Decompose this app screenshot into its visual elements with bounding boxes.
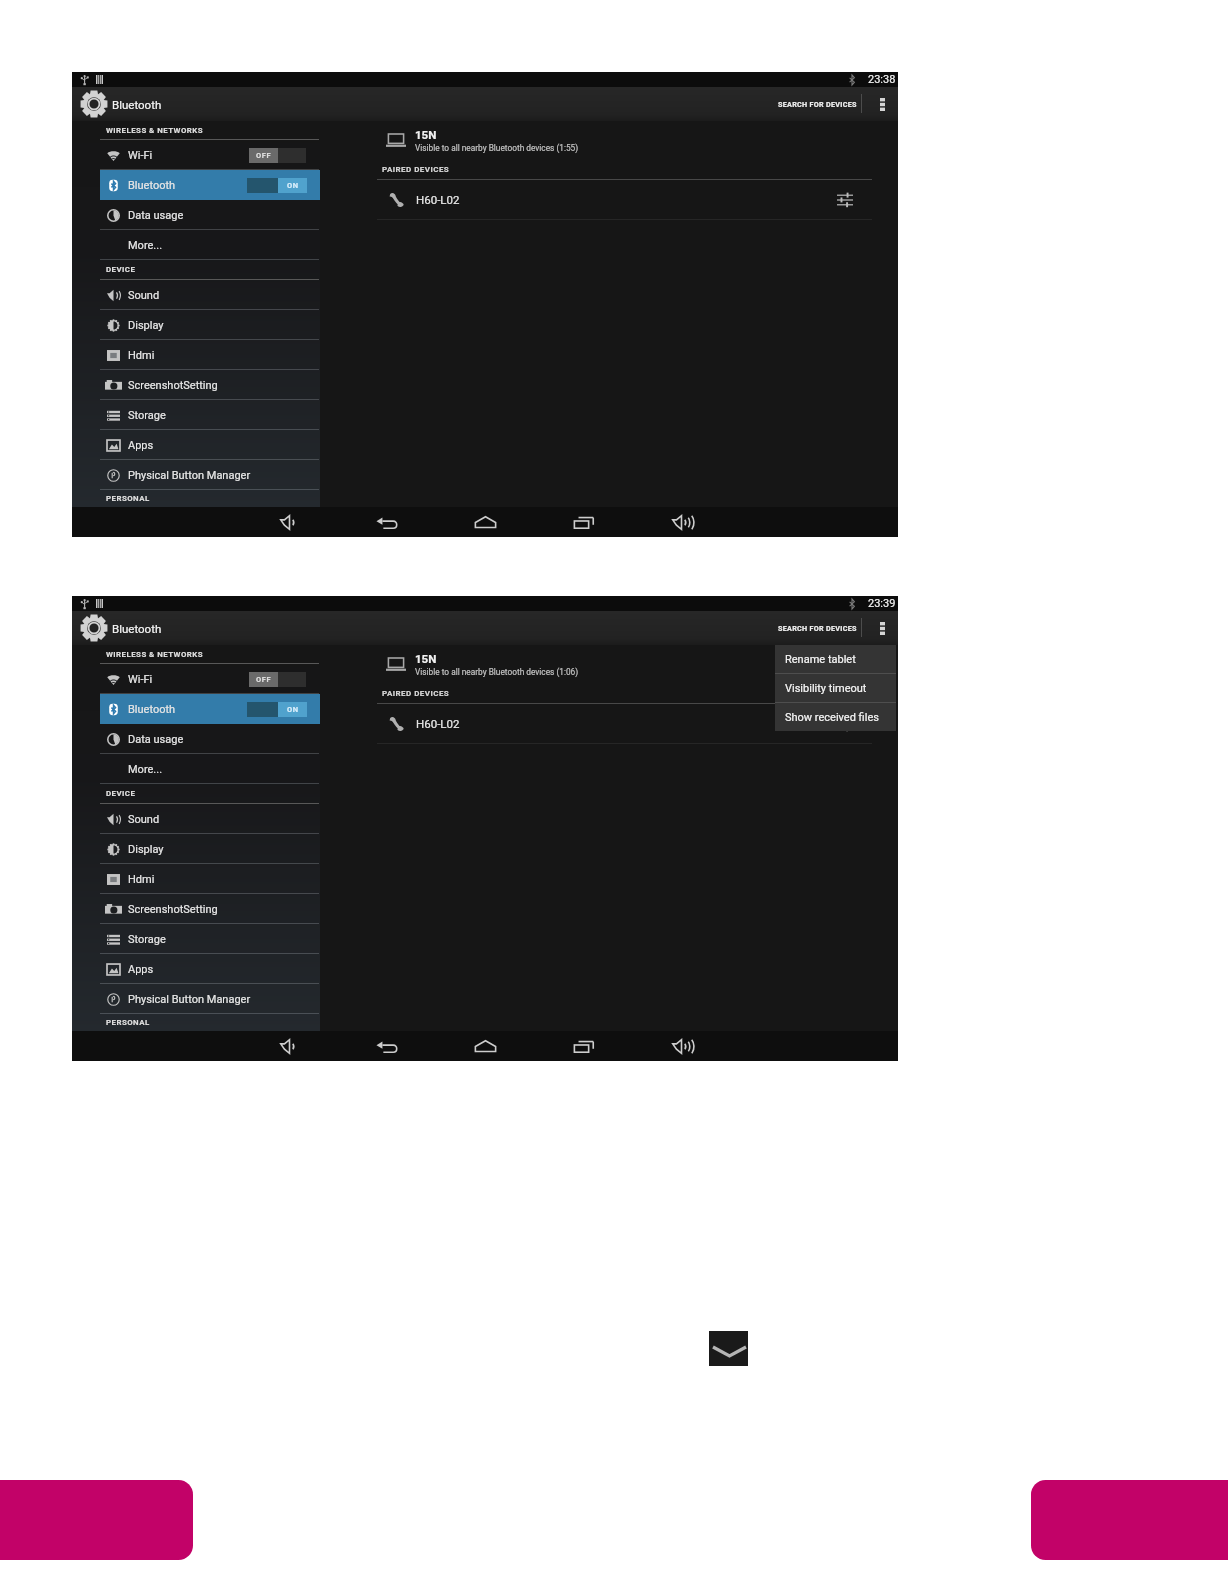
button[interactable]: Storage [72, 924, 320, 954]
staticText: Bluetooth [128, 179, 176, 192]
button[interactable]: SEARCH FOR DEVICES [772, 611, 862, 645]
button[interactable]: Apps [72, 430, 320, 460]
button[interactable]: Show received files [775, 703, 896, 731]
button[interactable]: Physical Button Manager [72, 460, 320, 490]
button[interactable]: Back [366, 507, 408, 537]
button[interactable]: Apps [72, 954, 320, 984]
staticText: 23:38 [868, 73, 896, 86]
button[interactable]: Home [464, 507, 506, 537]
staticText: PERSONAL [106, 494, 150, 503]
button[interactable]: OFF [249, 672, 306, 687]
staticText: Show received files [785, 711, 879, 724]
button[interactable]: Recents [563, 507, 605, 537]
button[interactable]: Hdmi [72, 340, 320, 370]
staticText: Display [128, 843, 164, 856]
staticText: Data usage [128, 209, 184, 222]
staticText: Visible to all nearby Bluetooth devices … [415, 143, 579, 153]
button[interactable]: H60-L02 [320, 704, 898, 743]
staticText: DEVICE [106, 789, 136, 798]
button[interactable]: More options [866, 611, 898, 645]
staticText: More... [128, 239, 163, 252]
button[interactable]: Mail [709, 1331, 748, 1366]
button[interactable]: More options [866, 87, 898, 121]
button[interactable]: H60-L02 [320, 180, 898, 219]
button[interactable]: OFF [249, 148, 306, 163]
button[interactable]: Display [72, 834, 320, 864]
button[interactable]: Data usage [72, 200, 320, 230]
staticText: ON [287, 705, 299, 714]
staticText: H60-L02 [416, 717, 460, 730]
button[interactable]: More... [72, 754, 320, 784]
staticText: WIRELESS & NETWORKS [106, 126, 204, 135]
button[interactable]: Home [464, 1031, 506, 1061]
button[interactable]: ScreenshotSetting [72, 894, 320, 924]
staticText: Hdmi [128, 873, 155, 886]
button[interactable]: Hdmi [72, 864, 320, 894]
button[interactable]: Volume down [268, 1031, 310, 1061]
staticText: Physical Button Manager [128, 469, 251, 482]
staticText: Rename tablet [785, 653, 856, 666]
staticText: Display [128, 319, 164, 332]
staticText: OFF [256, 675, 272, 684]
staticText: Bluetooth [112, 98, 162, 111]
staticText: ON [287, 181, 299, 190]
staticText: Bluetooth [112, 622, 162, 635]
button[interactable]: Device settings [834, 189, 856, 211]
staticText: Hdmi [128, 349, 155, 362]
staticText: PERSONAL [106, 1018, 150, 1027]
button[interactable]: Bluetooth [100, 694, 320, 724]
staticText: Apps [128, 963, 154, 976]
button[interactable]: SEARCH FOR DEVICES [772, 87, 862, 121]
staticText: Visible to all nearby Bluetooth devices … [415, 667, 579, 677]
staticText: ScreenshotSetting [128, 379, 218, 392]
staticText: Physical Button Manager [128, 993, 251, 1006]
button[interactable]: Volume up [660, 507, 702, 537]
button[interactable]: 15N [320, 645, 898, 685]
button[interactable]: Device settings [834, 713, 856, 735]
button[interactable]: ON [247, 702, 307, 717]
button[interactable]: Wi-Fi [72, 664, 320, 694]
staticText: Sound [128, 289, 160, 302]
button[interactable]: Back [366, 1031, 408, 1061]
button[interactable]: More... [72, 230, 320, 260]
button[interactable]: Recents [563, 1031, 605, 1061]
button[interactable]: Volume up [660, 1031, 702, 1061]
staticText: H60-L02 [416, 193, 460, 206]
button[interactable]: ScreenshotSetting [72, 370, 320, 400]
staticText: 15N [415, 128, 437, 141]
button[interactable]: Display [72, 310, 320, 340]
staticText: Storage [128, 409, 166, 422]
button[interactable]: Storage [72, 400, 320, 430]
button[interactable]: ON [247, 178, 307, 193]
staticText: 15N [415, 652, 437, 665]
staticText: SEARCH FOR DEVICES [778, 624, 857, 632]
staticText: Visibility timeout [785, 682, 867, 695]
button[interactable]: Bluetooth [100, 170, 320, 200]
staticText: ScreenshotSetting [128, 903, 218, 916]
staticText: DEVICE [106, 265, 136, 274]
staticText: Wi-Fi [128, 673, 153, 686]
button[interactable]: Visibility timeout [775, 674, 896, 702]
staticText: More... [128, 763, 163, 776]
staticText: OFF [256, 151, 272, 160]
button[interactable]: Sound [72, 804, 320, 834]
staticText: Wi-Fi [128, 149, 153, 162]
staticText: 23:39 [868, 597, 896, 610]
button[interactable]: Volume down [268, 507, 310, 537]
button[interactable]: 15N [320, 121, 898, 161]
staticText: SEARCH FOR DEVICES [778, 100, 857, 108]
staticText: Sound [128, 813, 160, 826]
button[interactable]: Rename tablet [775, 645, 896, 673]
button[interactable]: Data usage [72, 724, 320, 754]
button[interactable]: Physical Button Manager [72, 984, 320, 1014]
button[interactable]: Sound [72, 280, 320, 310]
staticText: Storage [128, 933, 166, 946]
button[interactable]: Wi-Fi [72, 140, 320, 170]
staticText: Bluetooth [128, 703, 176, 716]
staticText: PAIRED DEVICES [382, 165, 450, 174]
staticText: Apps [128, 439, 154, 452]
staticText: Data usage [128, 733, 184, 746]
staticText: WIRELESS & NETWORKS [106, 650, 204, 659]
staticText: PAIRED DEVICES [382, 689, 450, 698]
